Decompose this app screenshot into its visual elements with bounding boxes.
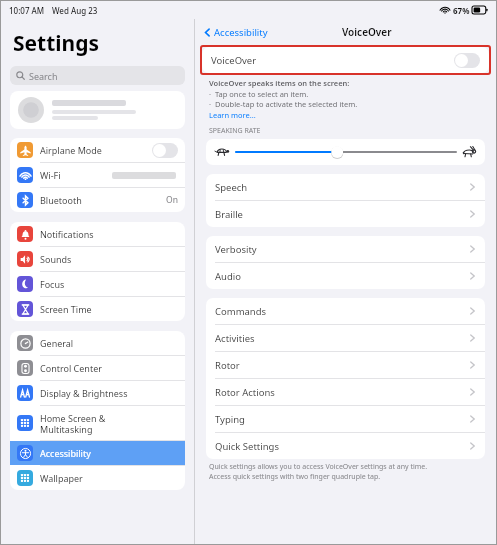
staticText: Wi-Fi: [40, 169, 61, 181]
staticText: Speech: [215, 181, 248, 194]
button[interactable]: Focus: [10, 272, 185, 296]
button[interactable]: Display & Brightness: [10, 381, 185, 405]
staticText: SPEAKING RATE: [209, 126, 261, 136]
staticText: Airplane Mode: [40, 144, 102, 156]
staticText: Typing: [215, 413, 245, 426]
button[interactable]: Commands: [206, 298, 485, 324]
staticText: Activities: [215, 332, 255, 345]
button[interactable]: [10, 91, 185, 129]
button[interactable]: Control Center: [10, 356, 185, 380]
staticText: Home Screen & Multitasking: [40, 412, 106, 435]
staticText: Control Center: [40, 362, 102, 374]
staticText: · Tap once to select an item.: [209, 89, 309, 99]
button[interactable]: Airplane Mode toggle: [152, 143, 178, 158]
staticText: Access quick settings with two finger qu…: [209, 472, 381, 482]
staticText: On: [166, 194, 178, 206]
staticText: Display & Brightness: [40, 387, 128, 399]
button[interactable]: Airplane Mode toggle: [454, 53, 480, 68]
staticText: Focus: [40, 278, 65, 290]
staticText: Search: [29, 70, 58, 82]
button[interactable]: Screen Time: [10, 297, 185, 321]
button[interactable]: Activities: [206, 325, 485, 351]
button[interactable]: Rotor: [206, 352, 485, 378]
staticText: Accessibility: [214, 26, 268, 39]
button[interactable]: Wallpaper: [10, 466, 185, 490]
button[interactable]: Rotor Actions: [206, 379, 485, 405]
button[interactable]: Speech: [206, 174, 485, 200]
button[interactable]: Typing: [206, 406, 485, 432]
button[interactable]: Verbosity: [206, 236, 485, 262]
staticText: Accessibility: [40, 447, 91, 459]
staticText: Verbosity: [215, 243, 257, 256]
staticText: Settings: [13, 29, 100, 58]
button[interactable]: General: [10, 331, 185, 355]
staticText: Braille: [215, 208, 243, 221]
button[interactable]: Home Screen & Multitasking: [10, 406, 185, 440]
button[interactable]: Accessibility: [10, 441, 185, 465]
staticText: Wallpaper: [40, 472, 83, 484]
staticText: VoiceOver: [342, 25, 392, 39]
staticText: General: [40, 337, 74, 349]
button[interactable]: Airplane Mode: [10, 138, 185, 162]
staticText: Rotor Actions: [215, 386, 275, 399]
button[interactable]: Sounds: [10, 247, 185, 271]
staticText: Audio: [215, 270, 241, 283]
button[interactable]: Braille: [206, 201, 485, 227]
staticText: Quick settings allows you to access Voic…: [209, 462, 428, 472]
staticText: Bluetooth: [40, 194, 82, 206]
staticText: Rotor: [215, 359, 240, 372]
staticText: Learn more...: [209, 110, 256, 120]
button[interactable]: Quick Settings: [206, 433, 485, 459]
staticText: VoiceOver speaks items on the screen:: [209, 78, 350, 88]
staticText: Notifications: [40, 228, 94, 240]
staticText: Screen Time: [40, 303, 92, 315]
button[interactable]: Audio: [206, 263, 485, 289]
staticText: VoiceOver: [211, 54, 257, 67]
button[interactable]: VoiceOver: [202, 47, 489, 73]
staticText: Commands: [215, 305, 267, 318]
button[interactable]: Search: [10, 66, 185, 85]
staticText: · Double-tap to activate the selected it…: [209, 99, 358, 109]
staticText: Sounds: [40, 253, 72, 265]
button[interactable]: Learn more...: [209, 110, 256, 120]
staticText: 10:07 AM: [9, 5, 45, 16]
staticText: Quick Settings: [215, 440, 279, 453]
staticText: 67%: [453, 5, 470, 16]
staticText: Wed Aug 23: [52, 5, 98, 16]
button[interactable]: Wi-Fi: [10, 163, 185, 187]
button[interactable]: Notifications: [10, 222, 185, 246]
button[interactable]: Accessibility: [201, 23, 270, 42]
button[interactable]: Bluetooth: [10, 188, 185, 212]
